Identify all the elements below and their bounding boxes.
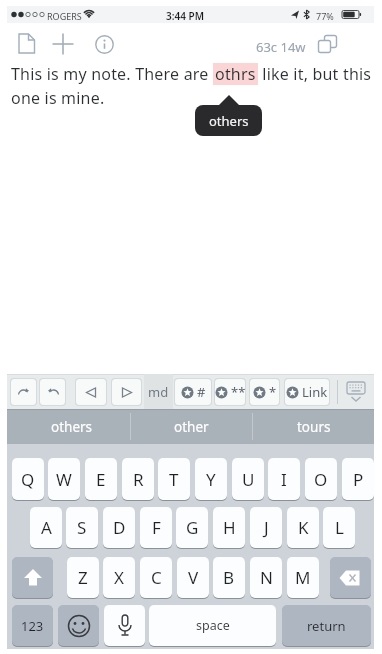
button[interactable]: J bbox=[250, 507, 282, 548]
staticText: Z bbox=[78, 566, 88, 589]
staticText: T bbox=[169, 468, 179, 491]
staticText: others bbox=[51, 418, 93, 436]
staticText: R bbox=[133, 468, 144, 491]
staticText: return bbox=[307, 617, 346, 635]
button[interactable]: other bbox=[131, 409, 252, 444]
staticText: I bbox=[281, 468, 287, 491]
button[interactable] bbox=[75, 378, 107, 406]
staticText: 3:44 PM bbox=[166, 9, 204, 23]
button[interactable]: S bbox=[66, 507, 98, 548]
staticText: E bbox=[96, 468, 106, 491]
button[interactable]: others bbox=[195, 105, 262, 136]
button[interactable]: Link bbox=[284, 378, 330, 406]
staticText: 123 bbox=[21, 617, 44, 635]
button[interactable]: N bbox=[250, 557, 282, 598]
button[interactable]: G bbox=[176, 507, 208, 548]
button[interactable]: md bbox=[144, 374, 173, 409]
button[interactable]: return bbox=[282, 605, 371, 646]
staticText: X bbox=[114, 566, 124, 589]
staticText: L bbox=[335, 516, 344, 539]
button[interactable]: O bbox=[305, 458, 337, 500]
button[interactable]: # bbox=[174, 378, 212, 406]
button[interactable]: C bbox=[140, 557, 172, 598]
staticText: M bbox=[295, 566, 311, 589]
staticText: other bbox=[174, 418, 209, 436]
button[interactable] bbox=[10, 378, 37, 406]
button[interactable] bbox=[58, 605, 99, 646]
staticText: md bbox=[148, 383, 169, 401]
button[interactable]: Q bbox=[12, 458, 44, 500]
button[interactable]: L bbox=[323, 507, 355, 548]
button[interactable] bbox=[39, 378, 66, 406]
button[interactable]: W bbox=[48, 458, 80, 500]
staticText: A bbox=[41, 516, 52, 539]
staticText: D bbox=[113, 516, 126, 539]
staticText: K bbox=[298, 516, 309, 539]
button[interactable] bbox=[14, 30, 40, 57]
staticText: tours bbox=[297, 418, 331, 436]
button[interactable]: I bbox=[268, 458, 300, 500]
staticText: like it, but this bbox=[258, 63, 372, 85]
button[interactable]: tours bbox=[253, 409, 375, 444]
button[interactable] bbox=[330, 557, 371, 598]
button[interactable]: K bbox=[287, 507, 319, 548]
button[interactable]: 123 bbox=[12, 605, 53, 646]
button[interactable]: ** bbox=[214, 378, 246, 406]
button[interactable]: Z bbox=[67, 557, 99, 598]
button[interactable]: P bbox=[342, 458, 374, 500]
staticText: ** bbox=[231, 383, 245, 401]
button[interactable]: others bbox=[7, 409, 137, 444]
button[interactable]: T bbox=[158, 458, 190, 500]
button[interactable]: A bbox=[30, 507, 62, 548]
staticText: * bbox=[269, 383, 277, 401]
staticText: Y bbox=[206, 468, 216, 491]
button[interactable]: V bbox=[177, 557, 209, 598]
button[interactable]: D bbox=[103, 507, 135, 548]
button[interactable] bbox=[111, 378, 142, 406]
staticText: N bbox=[260, 566, 273, 589]
staticText: V bbox=[188, 566, 199, 589]
button[interactable]: U bbox=[232, 458, 264, 500]
staticText: H bbox=[223, 516, 236, 539]
button[interactable]: H bbox=[213, 507, 245, 548]
button[interactable] bbox=[12, 557, 53, 598]
button[interactable]: B bbox=[213, 557, 245, 598]
button[interactable] bbox=[52, 33, 74, 55]
button[interactable]: X bbox=[103, 557, 135, 598]
button[interactable] bbox=[95, 35, 114, 54]
staticText: ROGERS bbox=[47, 10, 82, 22]
button[interactable]: E bbox=[85, 458, 117, 500]
staticText: G bbox=[186, 516, 199, 539]
staticText: U bbox=[242, 468, 255, 491]
button[interactable]: space bbox=[149, 605, 276, 646]
staticText: C bbox=[151, 566, 162, 589]
button[interactable] bbox=[317, 34, 338, 54]
button[interactable]: Y bbox=[195, 458, 227, 500]
staticText: othrs bbox=[215, 63, 256, 85]
staticText: J bbox=[264, 516, 269, 539]
staticText: This is my note. There are bbox=[11, 63, 213, 85]
staticText: space bbox=[196, 617, 230, 634]
staticText: 63c 14w bbox=[256, 38, 306, 56]
staticText: P bbox=[353, 468, 364, 491]
staticText: B bbox=[223, 566, 235, 589]
button[interactable]: F bbox=[140, 507, 172, 548]
staticText: W bbox=[56, 468, 72, 491]
button[interactable] bbox=[341, 378, 371, 406]
staticText: S bbox=[77, 516, 87, 539]
staticText: O bbox=[314, 468, 328, 491]
staticText: 77% bbox=[316, 10, 334, 22]
staticText: F bbox=[152, 516, 161, 539]
button[interactable] bbox=[104, 605, 145, 646]
staticText: Q bbox=[21, 468, 35, 491]
staticText: one is mine. bbox=[11, 87, 105, 109]
button[interactable]: M bbox=[287, 557, 319, 598]
staticText: Link bbox=[302, 383, 328, 401]
staticText: # bbox=[197, 383, 206, 401]
staticText: others bbox=[209, 112, 249, 130]
button[interactable]: * bbox=[249, 378, 280, 406]
button[interactable]: R bbox=[122, 458, 154, 500]
